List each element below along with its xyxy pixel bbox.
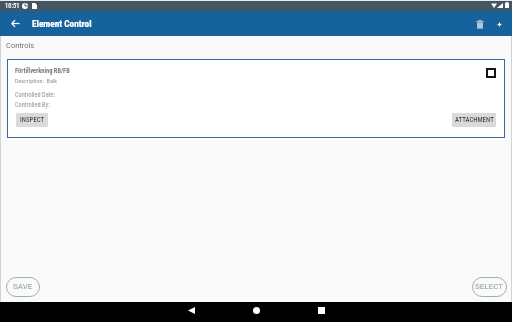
staticText: Description: Balk [15,77,58,84]
staticText: Controlled By: [15,101,50,108]
staticText: ATTACHMENT [455,116,494,124]
button[interactable]: More options [491,16,507,32]
staticText: INSPECT [20,116,45,124]
button[interactable]: Back [181,300,201,320]
button[interactable]: SELECT [472,277,507,297]
button[interactable]: Home [246,300,266,320]
button[interactable]: SAVE [6,277,40,297]
button[interactable]: Select control [486,68,496,78]
button[interactable]: ATTACHMENT [452,113,496,127]
button[interactable]: INSPECT [16,113,48,127]
button[interactable]: Navigate up [8,16,23,31]
button[interactable]: Delete [472,16,488,32]
staticText: SAVE [13,282,33,291]
staticText: SELECT [475,282,504,291]
button[interactable]: Förtillverkning RB/FB [7,59,505,138]
staticText: 10:51 [5,2,20,10]
staticText: Förtillverkning RB/FB [15,67,70,75]
staticText: Controls [6,41,35,50]
button[interactable]: Recent apps [311,300,331,320]
staticText: Controlled Date: [15,91,55,98]
staticText: Element Control [32,18,92,29]
